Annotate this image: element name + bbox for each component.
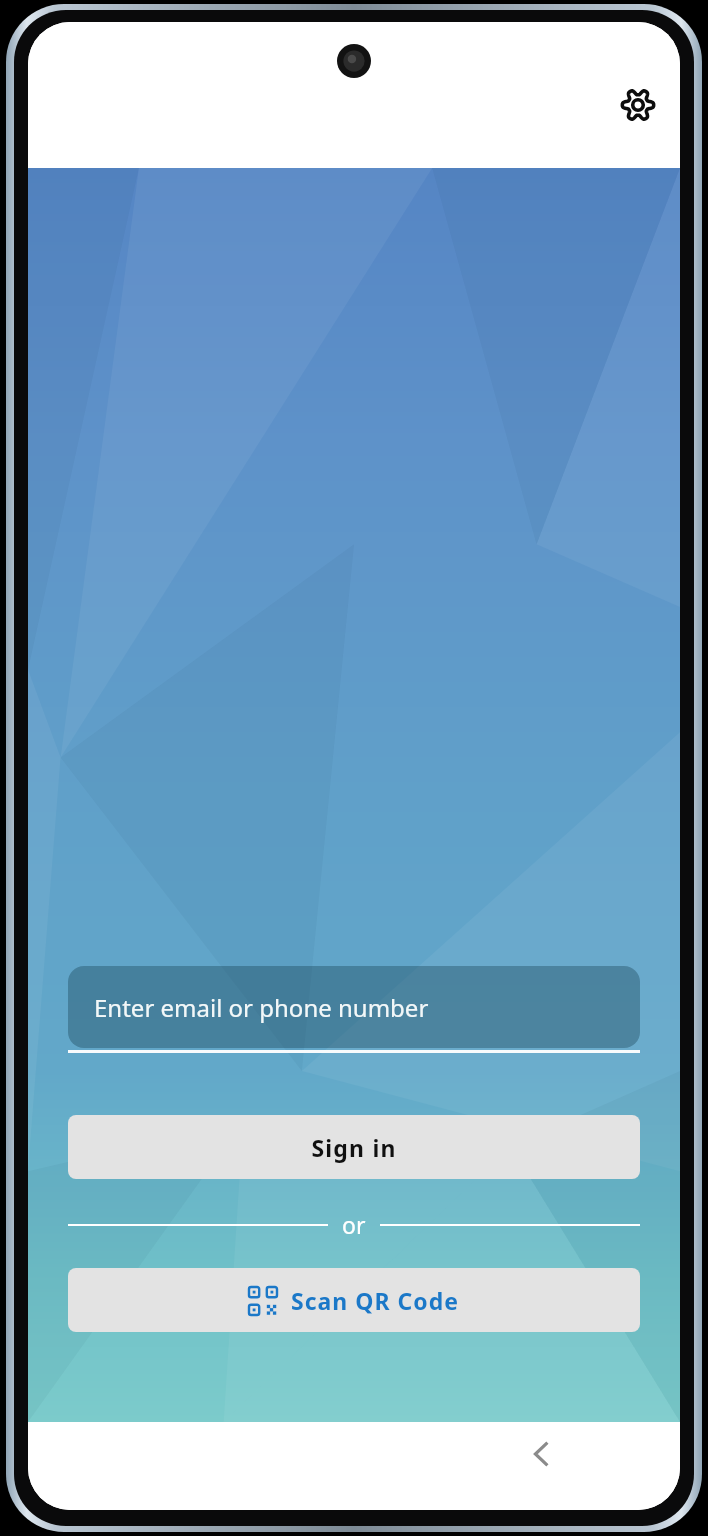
button[interactable]: Back <box>510 1422 574 1486</box>
staticText: Sign in <box>311 1132 397 1163</box>
staticText: Enter email or phone number <box>94 991 429 1024</box>
button[interactable]: Sign in <box>68 1115 640 1179</box>
staticText: Scan QR Code <box>291 1285 459 1316</box>
button[interactable]: Enter email or phone number <box>68 966 640 1053</box>
staticText: or <box>342 1209 366 1240</box>
button[interactable]: Scan QR Code <box>68 1268 640 1332</box>
button[interactable]: Settings <box>610 77 666 133</box>
